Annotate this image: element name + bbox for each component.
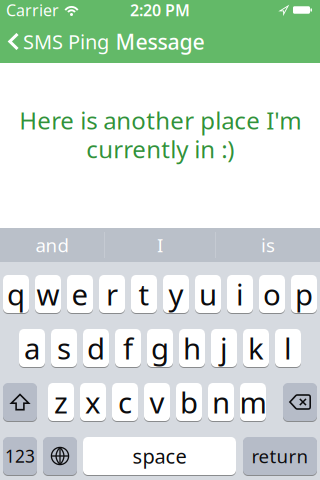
staticText: Carrier <box>6 0 59 21</box>
button[interactable]: Shift <box>3 382 37 421</box>
staticText: k <box>248 328 264 367</box>
button[interactable]: a <box>19 328 45 367</box>
staticText: is <box>261 233 275 257</box>
staticText: l <box>284 328 292 367</box>
button[interactable]: d <box>83 328 109 367</box>
button[interactable]: l <box>275 328 301 367</box>
staticText: Message <box>115 27 204 56</box>
button[interactable]: j <box>211 328 237 367</box>
staticText: c <box>118 382 132 421</box>
button[interactable]: Next keyboard <box>43 436 77 475</box>
staticText: I <box>157 233 163 257</box>
staticText: o <box>263 274 281 313</box>
staticText: b <box>180 382 198 421</box>
button[interactable]: s <box>51 328 77 367</box>
button[interactable]: p <box>291 274 317 313</box>
button[interactable]: h <box>179 328 205 367</box>
button[interactable]: return <box>243 436 317 475</box>
staticText: m <box>239 382 266 421</box>
button[interactable]: t <box>131 274 157 313</box>
button[interactable]: b <box>176 382 202 421</box>
staticText: x <box>85 382 101 421</box>
button[interactable]: I <box>104 228 216 262</box>
staticText: return <box>251 444 308 468</box>
button[interactable]: SMS Ping <box>8 28 109 55</box>
staticText: y <box>168 274 183 313</box>
button[interactable]: v <box>144 382 170 421</box>
staticText: and <box>35 233 68 257</box>
staticText: w <box>36 274 59 313</box>
button[interactable]: n <box>208 382 234 421</box>
staticText: r <box>106 274 118 313</box>
button[interactable]: r <box>99 274 125 313</box>
staticText: g <box>151 328 169 367</box>
staticText: e <box>71 274 88 313</box>
staticText: j <box>220 328 228 367</box>
button[interactable]: c <box>112 382 138 421</box>
staticText: i <box>236 274 244 313</box>
button[interactable]: x <box>80 382 106 421</box>
button[interactable]: is <box>216 228 320 262</box>
staticText: v <box>149 382 164 421</box>
button[interactable]: 123 <box>3 436 37 475</box>
staticText: SMS Ping <box>23 28 109 55</box>
staticText: p <box>295 274 313 313</box>
staticText: u <box>199 274 217 313</box>
staticText: t <box>138 274 149 313</box>
button[interactable]: w <box>35 274 61 313</box>
staticText: f <box>123 328 133 367</box>
button[interactable]: space <box>83 436 236 475</box>
staticText: q <box>7 274 25 313</box>
button[interactable]: y <box>163 274 189 313</box>
button[interactable]: and <box>0 228 104 262</box>
staticText: Here is another place I'm currently in :… <box>19 104 301 165</box>
button[interactable]: q <box>3 274 29 313</box>
staticText: a <box>24 328 40 367</box>
button[interactable]: m <box>240 382 266 421</box>
staticText: 123 <box>5 444 35 467</box>
staticText: z <box>54 382 68 421</box>
button[interactable]: e <box>67 274 93 313</box>
staticText: n <box>212 382 230 421</box>
button[interactable]: k <box>243 328 269 367</box>
button[interactable]: g <box>147 328 173 367</box>
staticText: d <box>87 328 105 367</box>
button[interactable]: Delete <box>283 382 317 421</box>
button[interactable]: u <box>195 274 221 313</box>
staticText: space <box>132 443 186 469</box>
staticText: h <box>183 328 201 367</box>
button[interactable]: f <box>115 328 141 367</box>
staticText: 2:20 PM <box>130 0 190 21</box>
button[interactable]: i <box>227 274 253 313</box>
button[interactable]: z <box>48 382 74 421</box>
staticText: s <box>57 328 71 367</box>
button[interactable]: o <box>259 274 285 313</box>
